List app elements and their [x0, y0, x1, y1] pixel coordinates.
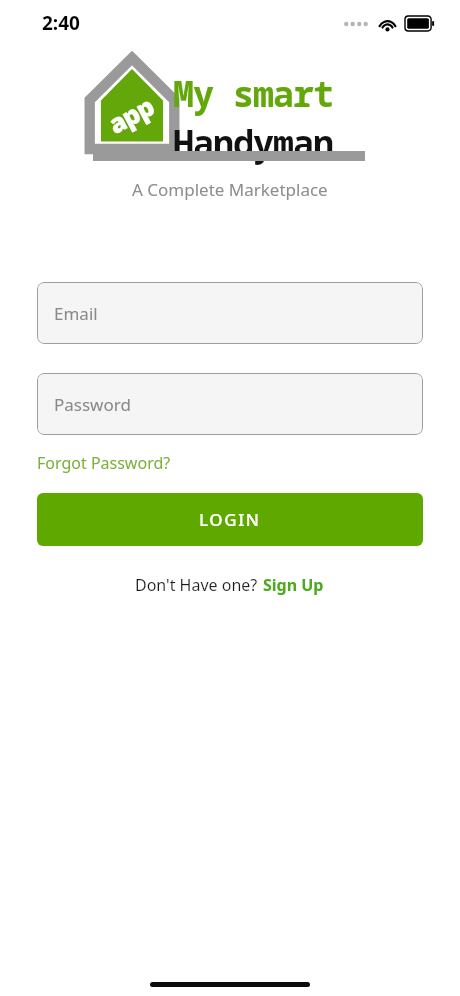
staticText: LOGIN — [199, 508, 261, 531]
staticText: Forgot Password? — [37, 452, 171, 474]
button[interactable]: Sign Up — [262, 572, 325, 598]
staticText: A Complete Marketplace — [132, 178, 328, 201]
button[interactable]: Email — [37, 282, 423, 344]
staticText: Email — [54, 302, 98, 325]
staticText: app — [101, 88, 159, 141]
button[interactable]: Forgot Password? — [36, 450, 172, 476]
staticText: My smart — [173, 70, 334, 118]
button[interactable]: Password — [37, 373, 423, 435]
staticText: 2:40 — [42, 10, 80, 36]
staticText: Handyman — [173, 119, 334, 167]
button[interactable]: LOGIN — [37, 493, 423, 546]
staticText: Don't Have one? — [135, 574, 262, 596]
staticText: Password — [54, 393, 131, 416]
staticText: Sign Up — [263, 574, 324, 596]
